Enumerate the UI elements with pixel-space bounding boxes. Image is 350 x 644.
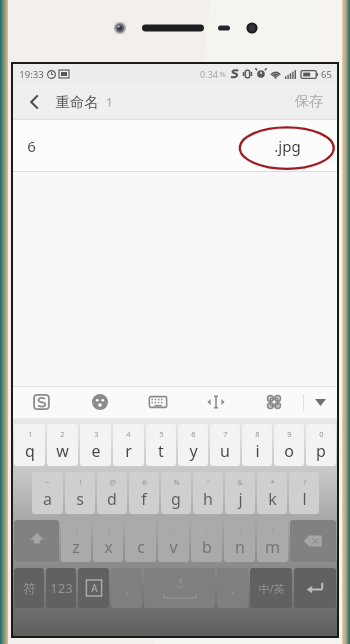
staticText: u bbox=[220, 440, 230, 462]
staticText: @ bbox=[109, 477, 116, 487]
staticText: 重命名 bbox=[55, 93, 99, 111]
button[interactable]: Shift bbox=[14, 520, 59, 562]
staticText: g bbox=[171, 488, 181, 510]
button[interactable]: ; bbox=[224, 520, 255, 562]
staticText: 2 bbox=[60, 429, 65, 439]
staticText: & bbox=[237, 477, 243, 487]
button[interactable]: ) bbox=[93, 520, 123, 562]
button[interactable]: 1 bbox=[14, 424, 45, 466]
button[interactable]: ~ bbox=[32, 472, 63, 514]
button[interactable]: 5 bbox=[146, 424, 176, 466]
staticText: 中/英 bbox=[258, 581, 285, 596]
button[interactable]: / bbox=[257, 520, 288, 562]
button[interactable]: 保存 bbox=[281, 84, 337, 120]
button[interactable]: 3 bbox=[80, 424, 111, 466]
button[interactable]: ( bbox=[61, 520, 91, 562]
staticText: A bbox=[91, 581, 98, 595]
staticText: % bbox=[219, 69, 226, 79]
button[interactable]: Keyboard layout bbox=[129, 386, 187, 418]
button[interactable]: 4 bbox=[113, 424, 144, 466]
staticText: : bbox=[206, 525, 209, 535]
staticText: e bbox=[91, 440, 101, 462]
staticText: h bbox=[203, 488, 213, 510]
staticText: f bbox=[141, 488, 147, 510]
staticText: ; bbox=[239, 525, 242, 535]
staticText: * bbox=[270, 477, 275, 487]
staticText: 7 bbox=[223, 429, 228, 439]
staticText: 1 bbox=[106, 94, 113, 110]
staticText: 符 bbox=[23, 580, 36, 596]
staticText: k bbox=[268, 488, 277, 510]
button[interactable]: Shortcuts bbox=[245, 386, 303, 418]
staticText: .jpg bbox=[274, 136, 301, 156]
button[interactable]: Sogou input method bbox=[13, 386, 71, 418]
staticText: ~ bbox=[45, 477, 50, 487]
button[interactable]: _ bbox=[158, 520, 189, 562]
button[interactable]: 6 bbox=[13, 120, 337, 172]
button[interactable]: 8 bbox=[242, 424, 272, 466]
button[interactable]: 中/英 bbox=[250, 568, 292, 608]
button[interactable]: 2 bbox=[47, 424, 78, 466]
button[interactable]: 0 bbox=[306, 424, 336, 466]
staticText: ' bbox=[207, 477, 209, 487]
staticText: # bbox=[142, 477, 147, 487]
button[interactable]: # bbox=[129, 472, 159, 514]
button[interactable]: ' bbox=[193, 472, 223, 514]
button[interactable]: % bbox=[161, 472, 191, 514]
staticText: q bbox=[25, 440, 35, 462]
button[interactable]: Backspace bbox=[290, 520, 336, 562]
button[interactable]: Hide keyboard bbox=[304, 386, 337, 418]
staticText: o bbox=[284, 440, 294, 462]
staticText: / bbox=[271, 525, 274, 535]
staticText: 6 bbox=[27, 136, 36, 156]
staticText: t bbox=[158, 440, 164, 462]
staticText: w bbox=[56, 440, 69, 462]
button[interactable]: Emoji bbox=[71, 386, 129, 418]
button[interactable]: ! bbox=[65, 472, 95, 514]
button[interactable]: Back bbox=[13, 84, 55, 120]
button[interactable]: Enter bbox=[294, 568, 336, 608]
button[interactable]: 9 bbox=[274, 424, 304, 466]
button[interactable]: Input language bbox=[78, 568, 109, 608]
staticText: a bbox=[43, 488, 52, 510]
staticText: r bbox=[125, 440, 132, 462]
button[interactable]: ? bbox=[289, 472, 319, 514]
staticText: , bbox=[125, 579, 129, 598]
staticText: 4 bbox=[126, 429, 131, 439]
staticText: d bbox=[107, 488, 117, 510]
staticText: j bbox=[238, 488, 243, 510]
staticText: z bbox=[72, 536, 80, 558]
button[interactable]: @ bbox=[97, 472, 127, 514]
staticText: 5 bbox=[159, 429, 164, 439]
button[interactable]: 符 bbox=[14, 568, 44, 608]
button[interactable]: 7 bbox=[210, 424, 240, 466]
staticText: i bbox=[255, 440, 260, 462]
staticText: 3 bbox=[94, 429, 99, 439]
button[interactable]: * bbox=[257, 472, 287, 514]
staticText: ( bbox=[75, 525, 78, 535]
staticText: y bbox=[189, 440, 198, 462]
staticText: m bbox=[265, 536, 280, 558]
button[interactable]: - bbox=[125, 520, 156, 562]
button[interactable]: 6 bbox=[178, 424, 208, 466]
staticText: 1 bbox=[28, 429, 33, 439]
button[interactable]: : bbox=[191, 520, 222, 562]
staticText: 9 bbox=[287, 429, 292, 439]
button[interactable]: Move cursor bbox=[187, 386, 245, 418]
button[interactable]: & bbox=[225, 472, 255, 514]
staticText: c bbox=[137, 536, 145, 558]
button[interactable]: 123 bbox=[46, 568, 76, 608]
staticText: % bbox=[173, 477, 180, 487]
staticText: l bbox=[302, 488, 307, 510]
staticText: 0 bbox=[319, 429, 324, 439]
staticText: 19:33 bbox=[19, 68, 44, 81]
staticText: 123 bbox=[50, 579, 73, 597]
staticText: n bbox=[235, 536, 245, 558]
staticText: b bbox=[202, 536, 212, 558]
